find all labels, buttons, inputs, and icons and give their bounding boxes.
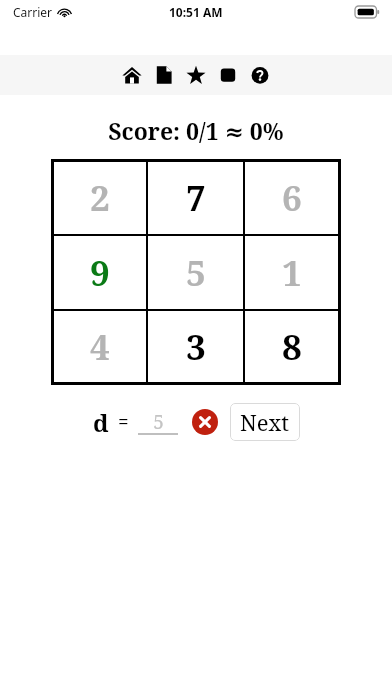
button[interactable]: 6 [245, 162, 338, 234]
staticText: 7 [186, 174, 206, 222]
staticText: 4 [90, 323, 110, 371]
staticText: 10:51 AM [169, 4, 223, 20]
button[interactable]: Favorites [185, 64, 207, 86]
staticText: Score: 0/1 ≈ 0% [108, 115, 284, 146]
button[interactable]: Home [121, 64, 143, 86]
staticText: Next [240, 407, 290, 437]
button[interactable]: 3 [148, 311, 243, 382]
staticText: 2 [90, 174, 110, 222]
staticText: 5 [186, 249, 206, 297]
staticText: 8 [282, 323, 302, 371]
button[interactable]: Stop [217, 64, 239, 86]
button[interactable]: 7 [148, 162, 243, 234]
staticText: 5 [153, 409, 164, 435]
staticText: 1 [282, 249, 302, 297]
staticText: = [118, 409, 129, 435]
staticText: d [93, 406, 109, 439]
button[interactable]: Document [153, 64, 175, 86]
button[interactable]: Help [249, 64, 271, 86]
button[interactable]: 4 [54, 311, 146, 382]
staticText: 6 [282, 174, 302, 222]
button[interactable]: 2 [54, 162, 146, 234]
button[interactable]: 5 [148, 236, 243, 309]
staticText: 3 [186, 323, 206, 371]
staticText: 9 [90, 249, 110, 297]
button[interactable]: Next [230, 403, 300, 441]
button[interactable]: 1 [245, 236, 338, 309]
button[interactable]: 8 [245, 311, 338, 382]
staticText: Carrier [13, 4, 53, 20]
button[interactable]: Incorrect [192, 409, 218, 435]
button[interactable]: 9 [54, 236, 146, 309]
button[interactable]: 5 [138, 409, 178, 435]
